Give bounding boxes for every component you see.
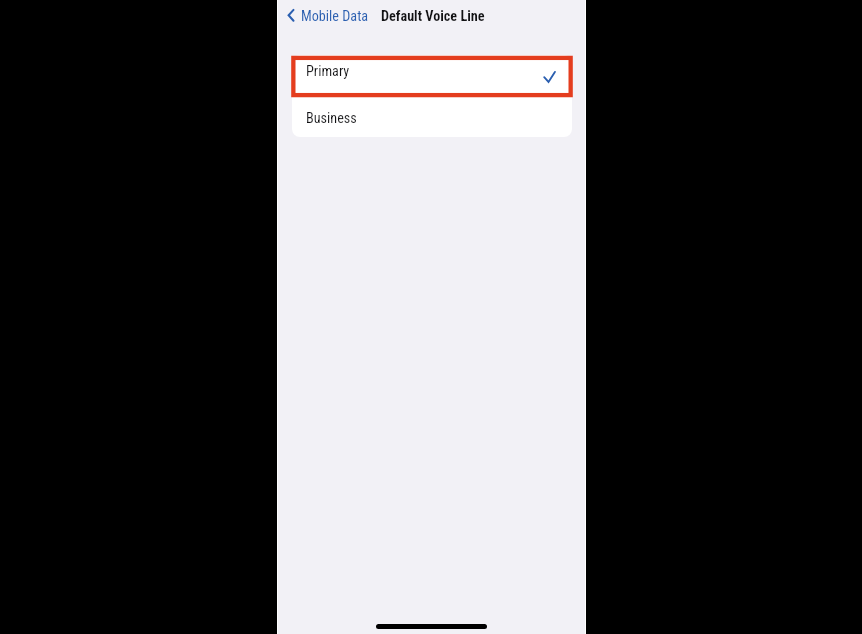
staticText: Default Voice Line [381, 8, 485, 25]
staticText: Mobile Data [301, 8, 369, 25]
staticText: Business [306, 110, 357, 127]
staticText: Primary [306, 63, 350, 80]
button[interactable]: Business [292, 96, 572, 137]
button[interactable]: Primary [292, 55, 572, 96]
other: Selected [544, 71, 556, 82]
button[interactable]: Back to Mobile Data [284, 2, 380, 29]
